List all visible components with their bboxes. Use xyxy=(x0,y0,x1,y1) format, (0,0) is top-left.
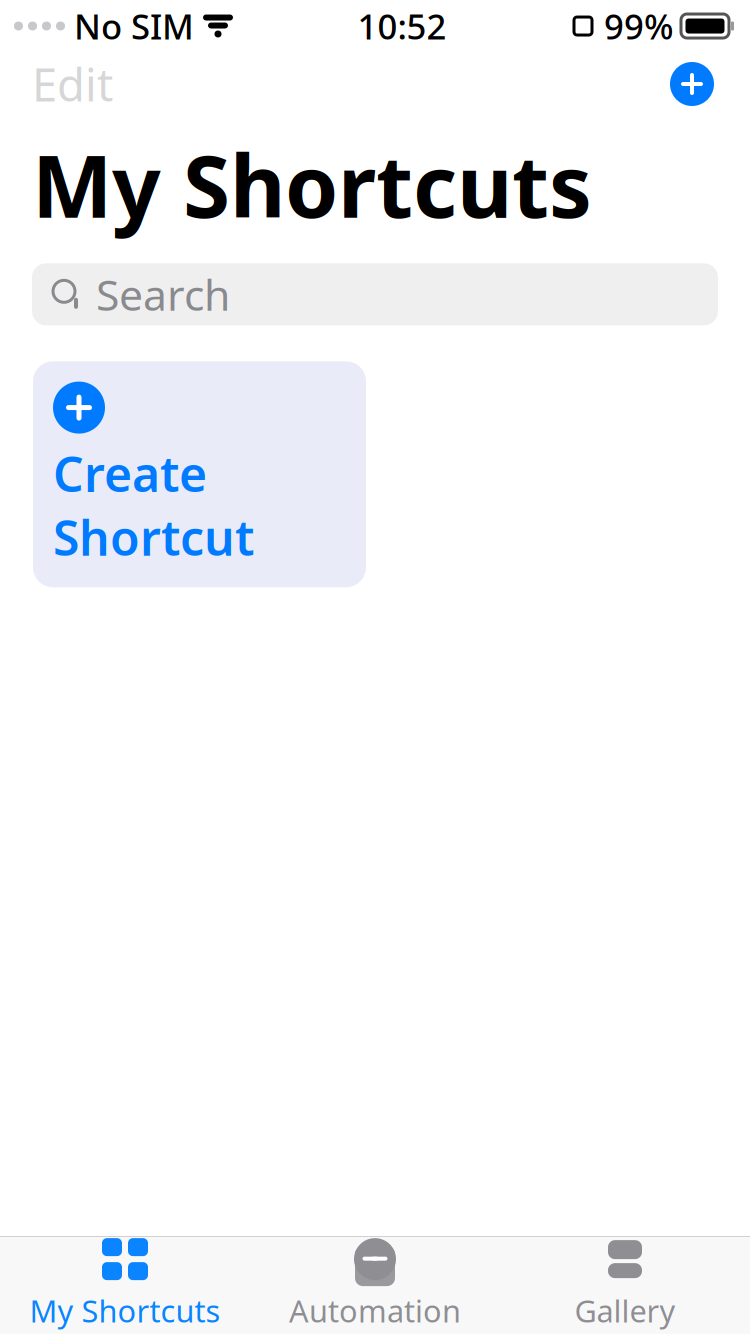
staticText: Automation xyxy=(289,1290,461,1331)
button[interactable]: Search xyxy=(32,263,718,325)
staticText: Create Shortcut xyxy=(53,442,254,569)
button[interactable]: My Shortcuts xyxy=(0,1226,250,1334)
staticText: Search xyxy=(96,266,230,323)
staticText: My Shortcuts xyxy=(29,1290,220,1331)
button[interactable]: Create Shortcut xyxy=(33,361,366,587)
staticText: My Shortcuts xyxy=(32,128,592,241)
button[interactable]: Automation xyxy=(250,1226,500,1334)
staticText: Gallery xyxy=(574,1290,675,1331)
button[interactable]: Create Shortcut xyxy=(662,54,722,114)
staticText: 99% xyxy=(604,3,674,49)
button[interactable]: Edit xyxy=(0,46,113,122)
button[interactable]: Gallery xyxy=(500,1226,750,1334)
staticText: Edit xyxy=(32,54,113,114)
staticText: No SIM xyxy=(74,3,194,49)
staticText: 10:52 xyxy=(357,3,446,49)
